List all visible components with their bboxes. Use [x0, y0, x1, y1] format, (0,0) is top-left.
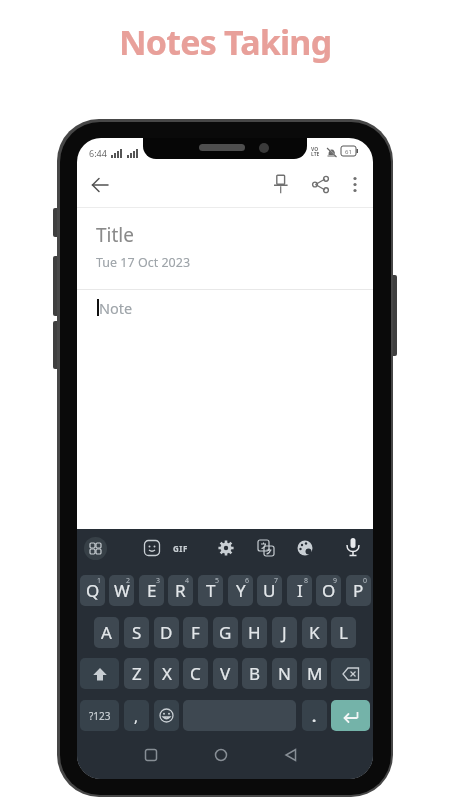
staticText: Notes Taking: [119, 19, 332, 65]
staticText: K: [309, 621, 320, 644]
button[interactable]: U: [257, 575, 282, 606]
button[interactable]: I: [287, 575, 312, 606]
staticText: 2: [126, 576, 131, 586]
staticText: 6: [245, 576, 250, 586]
staticText: 5: [215, 576, 220, 586]
staticText: 9: [333, 576, 338, 586]
button[interactable]: C: [183, 658, 208, 689]
button[interactable]: N: [272, 658, 297, 689]
staticText: F: [191, 621, 200, 644]
staticText: M: [307, 662, 323, 685]
staticText: E: [147, 579, 157, 602]
staticText: G: [219, 621, 232, 644]
button[interactable]: V: [213, 658, 238, 689]
button[interactable]: [142, 538, 162, 558]
button[interactable]: K: [302, 617, 327, 648]
button[interactable]: [139, 743, 163, 767]
button[interactable]: [311, 175, 331, 195]
button[interactable]: H: [242, 617, 267, 648]
button[interactable]: O: [316, 575, 341, 606]
button[interactable]: [84, 537, 107, 560]
button[interactable]: [295, 538, 315, 558]
button[interactable]: F: [183, 617, 208, 648]
staticText: D: [160, 621, 173, 644]
staticText: R: [175, 579, 186, 602]
button[interactable]: S: [124, 617, 149, 648]
staticText: 0: [363, 576, 368, 586]
staticText: A: [101, 621, 112, 644]
button[interactable]: [80, 658, 119, 689]
button[interactable]: [209, 743, 233, 767]
button[interactable]: Z: [124, 658, 149, 689]
button[interactable]: Q: [80, 575, 105, 606]
button[interactable]: GIF: [171, 538, 195, 558]
staticText: I: [297, 579, 303, 602]
staticText: Y: [236, 579, 246, 602]
staticText: 1: [97, 576, 102, 586]
staticText: 4: [185, 576, 190, 586]
staticText: C: [190, 662, 201, 685]
button[interactable]: [347, 175, 363, 195]
button[interactable]: X: [154, 658, 179, 689]
button[interactable]: W: [109, 575, 134, 606]
button[interactable]: [279, 743, 303, 767]
staticText: T: [206, 579, 216, 602]
staticText: 3: [156, 576, 161, 586]
button[interactable]: [256, 538, 276, 558]
button[interactable]: B: [242, 658, 267, 689]
staticText: V: [220, 662, 231, 685]
staticText: Z: [132, 662, 142, 685]
staticText: Title: [96, 222, 134, 248]
staticText: ?123: [89, 709, 111, 723]
button[interactable]: R: [168, 575, 193, 606]
button[interactable]: [331, 658, 370, 689]
staticText: .: [312, 706, 317, 726]
staticText: O: [322, 579, 336, 602]
staticText: N: [278, 662, 291, 685]
button[interactable]: ?123: [80, 700, 119, 731]
button[interactable]: L: [331, 617, 356, 648]
button[interactable]: ,: [124, 700, 149, 731]
staticText: 6:44: [89, 147, 107, 159]
button[interactable]: [154, 700, 179, 731]
staticText: 61: [345, 148, 352, 156]
staticText: P: [353, 579, 364, 602]
button[interactable]: [216, 538, 236, 558]
button[interactable]: G: [213, 617, 238, 648]
staticText: U: [263, 579, 276, 602]
staticText: GIF: [173, 543, 188, 554]
button[interactable]: M: [302, 658, 327, 689]
staticText: VO LTE: [311, 146, 320, 157]
button[interactable]: T: [198, 575, 223, 606]
staticText: S: [132, 621, 142, 644]
button[interactable]: D: [154, 617, 179, 648]
staticText: H: [248, 621, 261, 644]
button[interactable]: A: [94, 617, 119, 648]
staticText: X: [162, 662, 172, 685]
button[interactable]: J: [272, 617, 297, 648]
staticText: 7: [274, 576, 279, 586]
button[interactable]: [342, 536, 364, 560]
staticText: J: [282, 621, 287, 644]
button[interactable]: [89, 174, 111, 196]
button[interactable]: P: [346, 575, 371, 606]
button[interactable]: [331, 700, 370, 731]
staticText: B: [249, 662, 261, 685]
staticText: Q: [86, 579, 100, 602]
button[interactable]: Y: [228, 575, 253, 606]
staticText: Tue 17 Oct 2023: [96, 254, 191, 271]
staticText: ,: [134, 706, 139, 726]
button[interactable]: .: [302, 700, 327, 731]
staticText: W: [114, 579, 130, 602]
staticText: L: [339, 621, 348, 644]
staticText: Note: [99, 298, 133, 318]
button[interactable]: [271, 174, 291, 196]
staticText: 8: [304, 576, 309, 586]
button[interactable]: E: [139, 575, 164, 606]
